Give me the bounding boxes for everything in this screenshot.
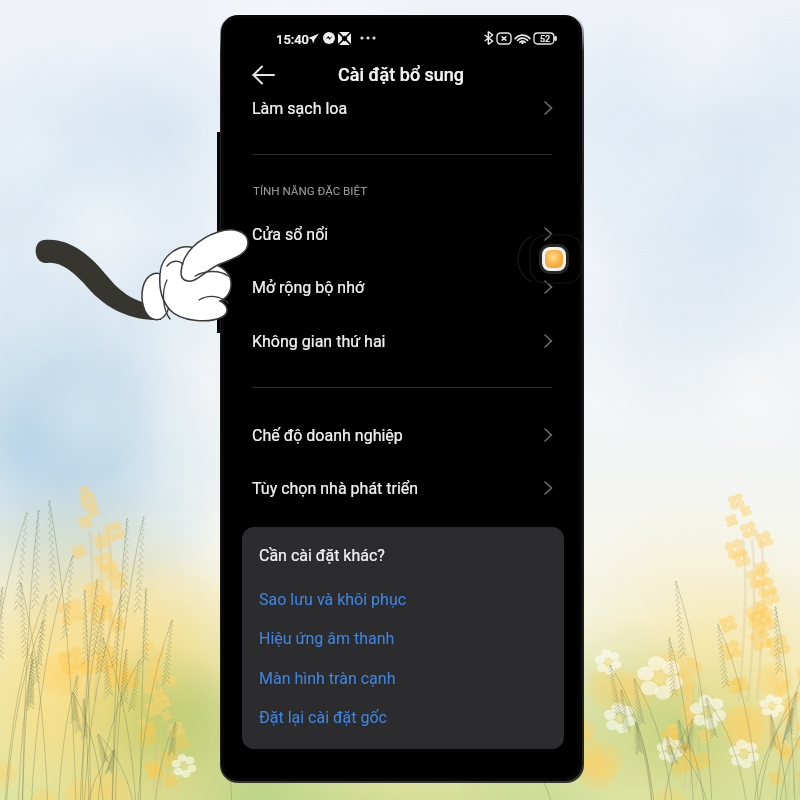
button[interactable]: Sao lưu và khôi phục xyxy=(256,584,456,614)
button[interactable]: Chế độ doanh nghiệp xyxy=(249,409,555,461)
staticText: Làm sạch loa xyxy=(252,99,348,118)
button[interactable]: Mở rộng bộ nhớ xyxy=(249,261,555,313)
staticText: Mở rộng bộ nhớ xyxy=(252,278,365,297)
staticText: Đặt lại cài đặt gốc xyxy=(259,708,387,727)
staticText: Màn hình tràn cạnh xyxy=(259,669,396,688)
button[interactable]: Cửa sổ nổi xyxy=(249,208,555,260)
staticText: Không gian thứ hai xyxy=(252,332,386,351)
staticText: Chế độ doanh nghiệp xyxy=(252,426,403,445)
button[interactable]: Tùy chọn nhà phát triển xyxy=(249,462,555,514)
staticText: Sao lưu và khôi phục xyxy=(259,590,407,609)
button[interactable]: Màn hình tràn cạnh xyxy=(256,663,456,693)
staticText: TÍNH NĂNG ĐẶC BIỆT xyxy=(253,184,368,198)
staticText: 15:40 xyxy=(276,32,309,47)
button[interactable]: Hiệu ứng âm thanh xyxy=(256,623,456,653)
staticText: 52 xyxy=(540,34,551,45)
staticText: Cài đặt bổ sung xyxy=(338,64,465,85)
button[interactable]: Làm sạch loa xyxy=(249,82,555,134)
staticText: Cửa sổ nổi xyxy=(252,225,329,244)
staticText: Cần cài đặt khác? xyxy=(259,546,385,565)
staticText: Hiệu ứng âm thanh xyxy=(259,629,395,648)
button[interactable]: Floating window shortcut xyxy=(542,247,566,271)
button[interactable]: Đặt lại cài đặt gốc xyxy=(256,702,456,732)
button[interactable]: Back xyxy=(252,61,278,89)
button[interactable]: Không gian thứ hai xyxy=(249,315,555,367)
staticText: Tùy chọn nhà phát triển xyxy=(252,479,419,498)
